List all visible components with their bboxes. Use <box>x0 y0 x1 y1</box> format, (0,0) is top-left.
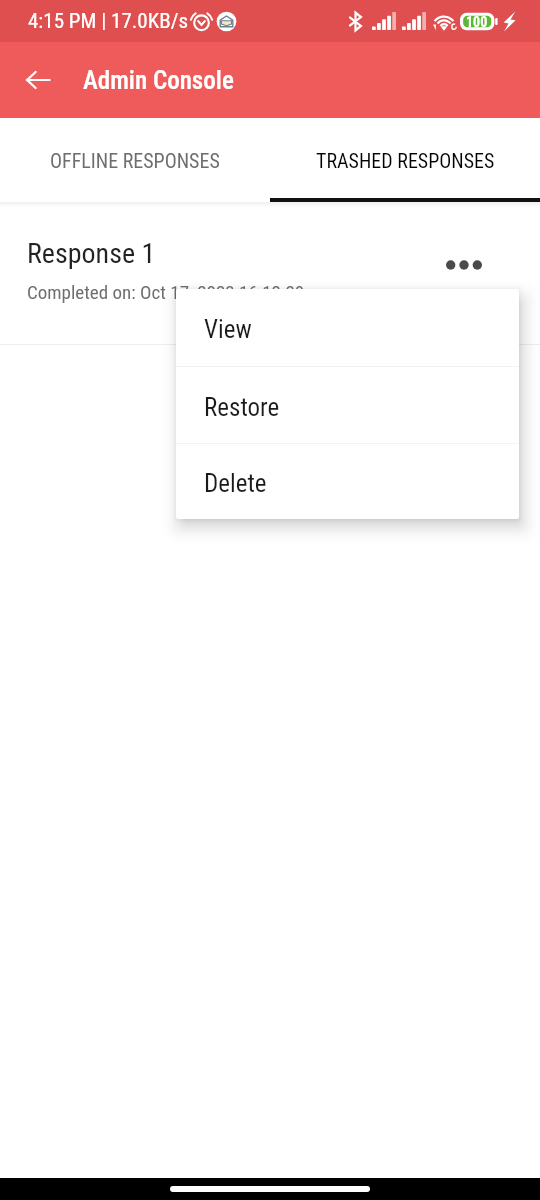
staticText: View <box>204 315 252 344</box>
button[interactable]: View <box>176 289 519 366</box>
button[interactable]: OFFLINE RESPONSES <box>0 118 270 198</box>
staticText: Response 1 <box>27 237 156 270</box>
staticText: OFFLINE RESPONSES <box>50 149 220 172</box>
staticText: 100 <box>466 14 488 30</box>
button[interactable]: Restore <box>176 367 519 443</box>
staticText: Completed on: Oct 17, 2023 16:12:20 <box>27 281 305 303</box>
staticText: Restore <box>204 393 280 422</box>
button[interactable]: TRASHED RESPONSES <box>270 118 540 198</box>
button[interactable]: Back <box>12 54 64 106</box>
staticText: TRASHED RESPONSES <box>316 149 495 172</box>
button[interactable]: Response 1 <box>0 207 540 344</box>
staticText: 4:15 PM | 17.0KB/s <box>28 9 189 34</box>
staticText: Admin Console <box>83 66 234 95</box>
staticText: Delete <box>204 469 267 498</box>
button[interactable]: Delete <box>176 444 519 519</box>
button[interactable]: More options <box>442 243 486 287</box>
